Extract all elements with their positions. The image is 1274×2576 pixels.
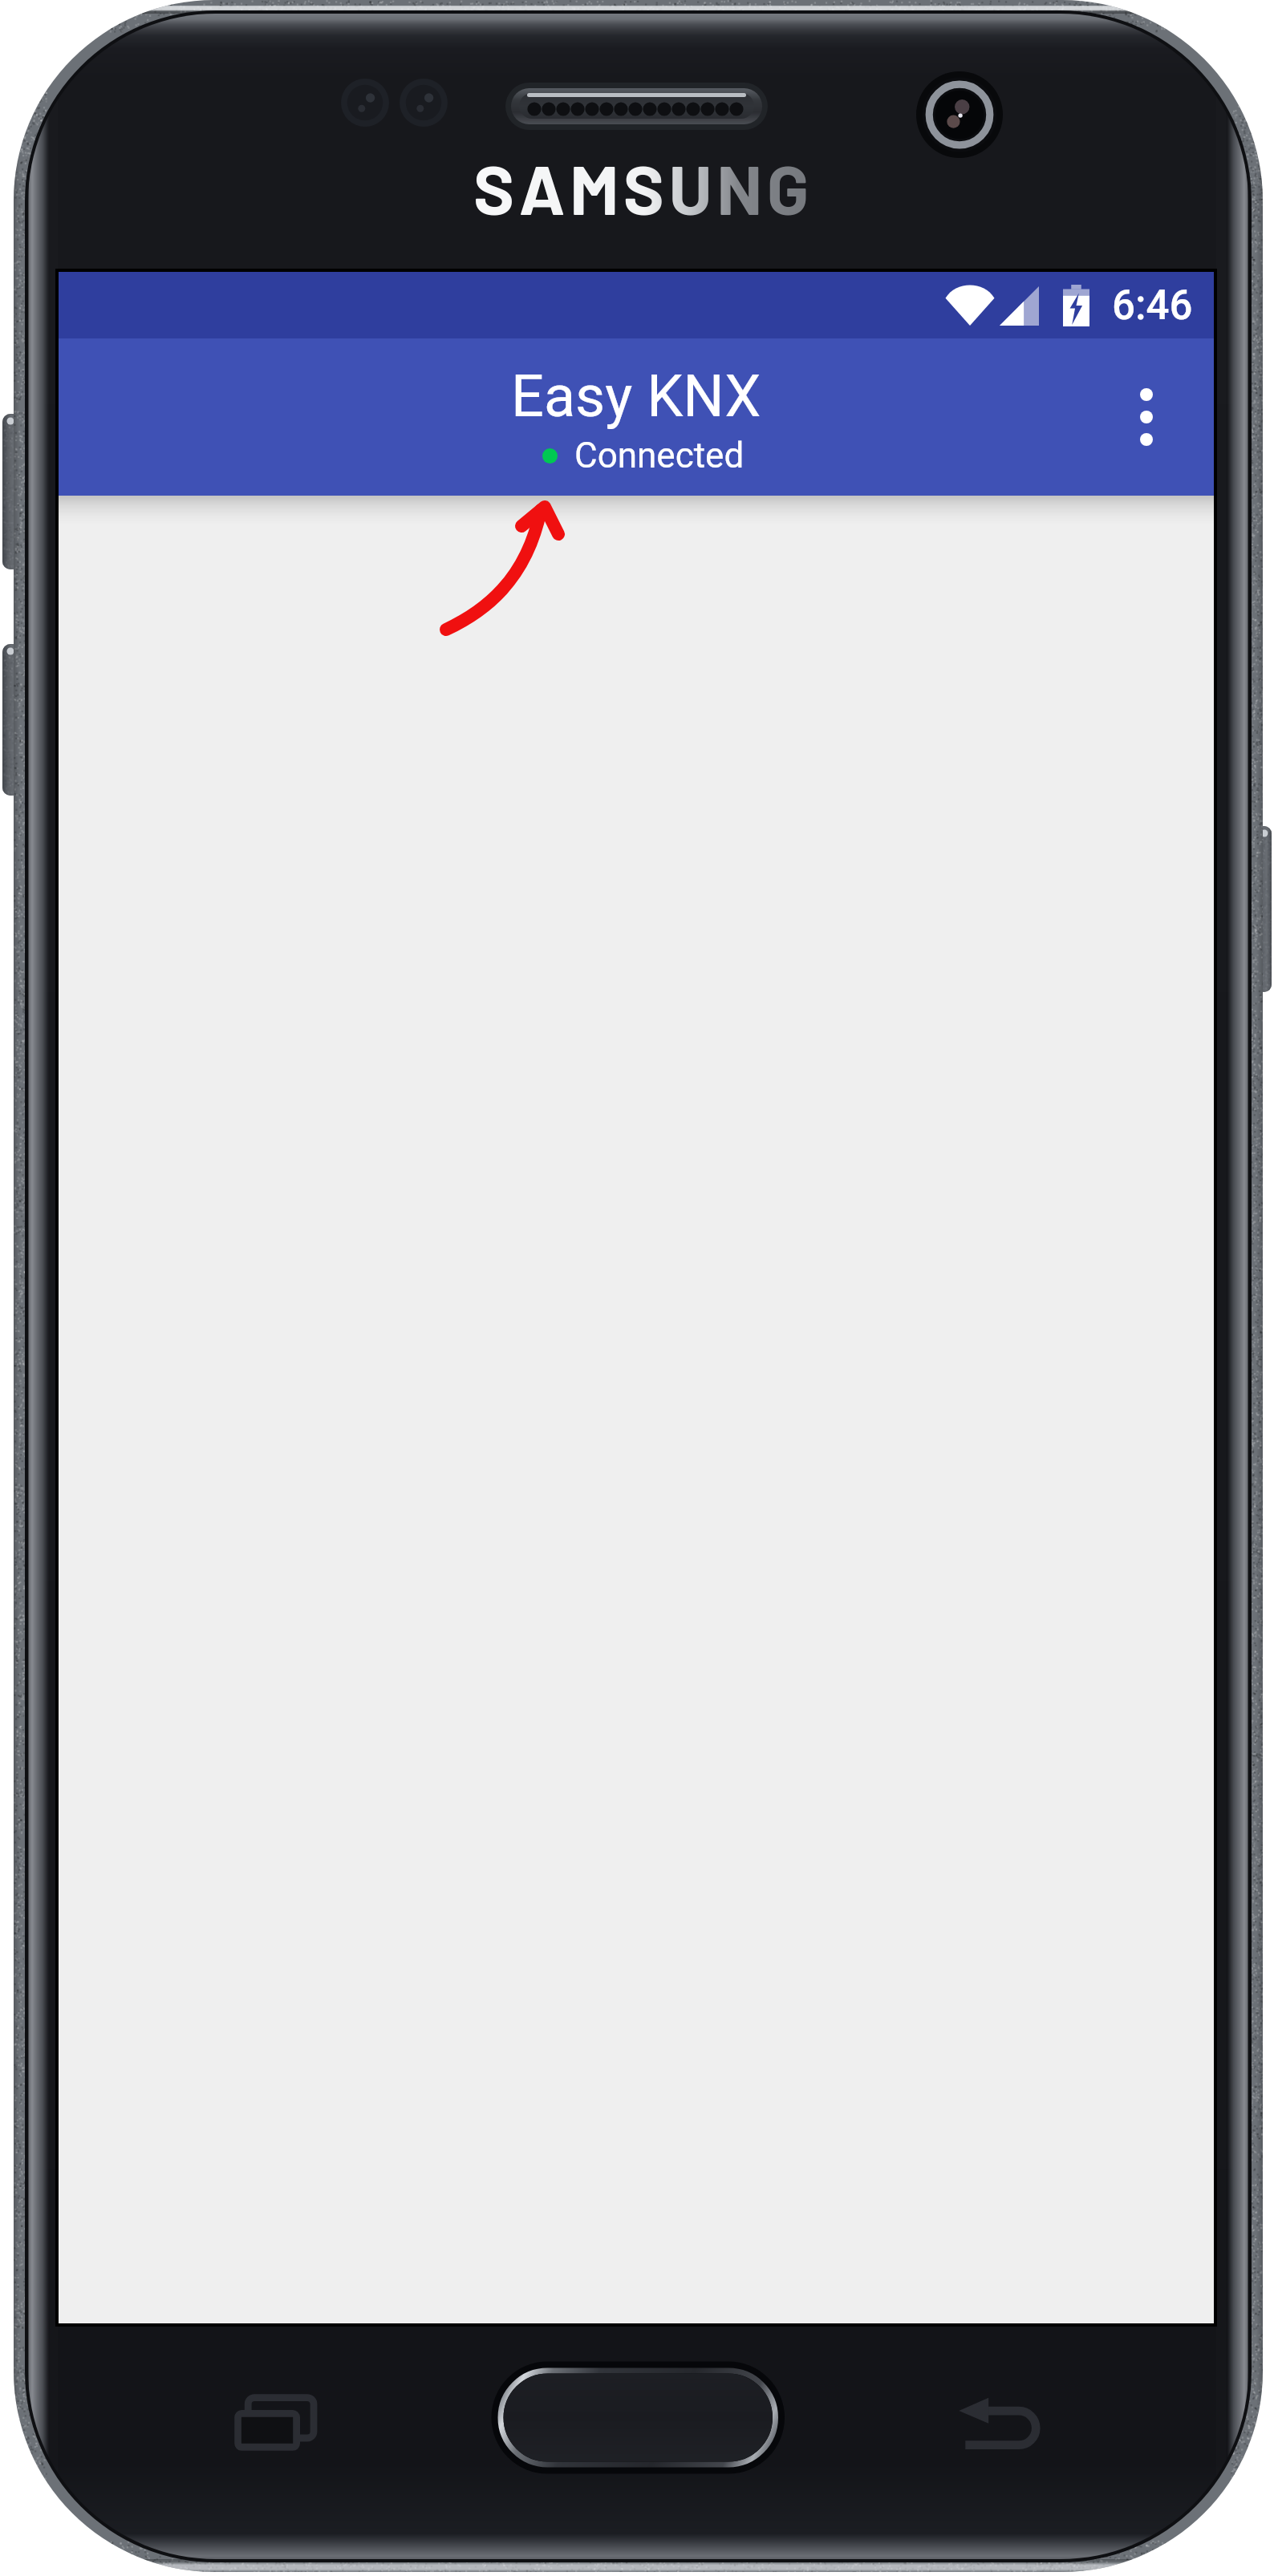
button[interactable]: More options (1098, 369, 1195, 465)
staticText: Connected (574, 435, 745, 476)
staticText: Easy KNX (511, 363, 761, 430)
button[interactable]: Easy KNX (59, 338, 1214, 496)
staticText: SAMSUNG (473, 146, 813, 229)
staticText: 6:46 (1112, 281, 1193, 330)
